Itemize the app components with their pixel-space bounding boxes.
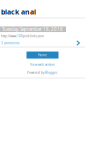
staticText: Blogger [45, 70, 57, 74]
staticText: . [57, 70, 58, 74]
staticText: View web version [30, 62, 55, 66]
button[interactable]: Older posts [76, 40, 85, 46]
staticText: black anal [1, 7, 36, 16]
staticText: 3 comments [1, 41, 19, 45]
staticText: http://www.100pinklinks.com [1, 34, 44, 38]
button[interactable]: 3 comments [0, 41, 19, 45]
button[interactable]: Home [26, 51, 58, 58]
staticText: Powered by [27, 70, 45, 74]
staticText: Tuesday, September 18, 2018 [2, 26, 63, 32]
button[interactable]: View web version [0, 62, 85, 66]
button[interactable]: Blogger [45, 70, 57, 74]
staticText: Home [38, 53, 47, 57]
